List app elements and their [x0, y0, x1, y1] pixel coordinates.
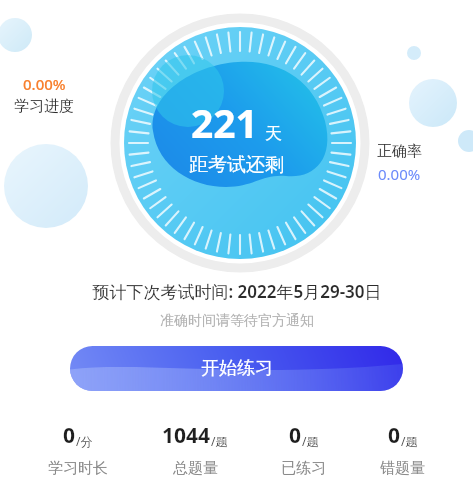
button[interactable]: 开始练习 [70, 346, 403, 391]
button[interactable]: 错题量 0/题 [374, 419, 431, 480]
staticText: /分 [76, 433, 93, 449]
staticText: 错题量 [380, 459, 425, 478]
staticText: 预计下次考试时间: 2022年5月29-30日 [92, 280, 382, 303]
button[interactable]: 学习时长 0/分 [42, 419, 114, 480]
staticText: 天 [265, 123, 282, 144]
button[interactable]: 已练习 0/题 [275, 419, 332, 480]
staticText: 学习时长 [48, 459, 108, 478]
staticText: 已练习 [281, 459, 326, 478]
staticText: 距考试还剩 [189, 153, 284, 177]
staticText: 0.00% [378, 164, 421, 184]
staticText: 总题量 [173, 459, 218, 478]
staticText: /题 [302, 433, 319, 449]
staticText: 1044 [162, 421, 211, 450]
staticText: 221 [191, 96, 258, 149]
staticText: /题 [401, 433, 418, 449]
staticText: 准确时间请等待官方通知 [160, 312, 314, 330]
staticText: 0 [388, 421, 401, 450]
staticText: 0.00% [23, 74, 66, 94]
button[interactable]: 总题量 1044/题 [156, 419, 234, 480]
staticText: /题 [211, 433, 228, 449]
staticText: 开始练习 [201, 357, 273, 380]
staticText: 正确率 [377, 142, 422, 161]
staticText: 0 [289, 421, 302, 450]
staticText: 0 [63, 421, 76, 450]
staticText: 学习进度 [14, 97, 74, 116]
